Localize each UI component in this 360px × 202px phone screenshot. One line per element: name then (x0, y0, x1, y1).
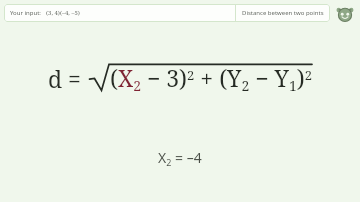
staticText: Distance between two points (242, 9, 324, 17)
staticText: (3, 4)(–4, –5) (46, 9, 80, 17)
button[interactable]: App logo (334, 3, 356, 25)
staticText: Your input: (10, 9, 41, 17)
staticText: X2 = –4 (158, 148, 202, 169)
staticText: d = (48, 63, 81, 94)
staticText: (X2 − 3)2 + (Y2 − Y1)2 (110, 62, 313, 95)
button[interactable]: Your input: (4, 4, 330, 22)
